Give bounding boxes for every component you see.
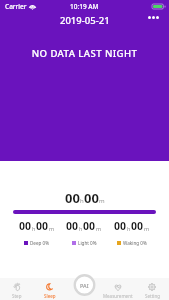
staticText: 00 — [114, 219, 127, 233]
staticText: Waking 0% — [123, 240, 147, 246]
button[interactable]: Waking 0% — [108, 240, 156, 246]
button[interactable]: Deep 0% — [13, 240, 60, 246]
staticText: m — [99, 197, 105, 205]
staticText: Setting — [145, 293, 160, 299]
button[interactable]: Setting — [135, 278, 169, 300]
staticText: Measurement — [103, 293, 133, 299]
staticText: m — [96, 225, 102, 232]
staticText: Light 0% — [78, 240, 97, 246]
button[interactable]: Measurement — [101, 278, 135, 300]
staticText: h — [80, 197, 84, 205]
staticText: 00 — [19, 219, 32, 233]
staticText: PAI — [80, 282, 89, 289]
staticText: Carrier — [5, 2, 27, 11]
button[interactable]: PAI — [73, 274, 96, 296]
staticText: 2019-05-21 — [60, 14, 110, 27]
staticText: NO DATA LAST NIGHT — [0, 47, 169, 60]
staticText: 00 — [66, 219, 79, 233]
staticText: 00 — [83, 219, 96, 233]
staticText: 10:19 AM — [70, 2, 99, 11]
staticText: 00 — [65, 189, 80, 207]
staticText: h — [127, 225, 131, 232]
button[interactable]: Step — [0, 278, 33, 300]
button[interactable]: Sleep — [33, 278, 67, 300]
staticText: Sleep — [44, 293, 56, 299]
staticText: Step — [12, 293, 22, 299]
staticText: m — [144, 225, 150, 232]
staticText: 00 — [36, 219, 49, 233]
button[interactable]: Light 0% — [60, 240, 108, 246]
button[interactable]: More options — [148, 16, 159, 19]
staticText: 00 — [131, 219, 144, 233]
staticText: 00 — [84, 189, 99, 207]
staticText: h — [32, 225, 36, 232]
staticText: Deep 0% — [30, 240, 50, 246]
staticText: m — [49, 225, 55, 232]
staticText: h — [79, 225, 83, 232]
